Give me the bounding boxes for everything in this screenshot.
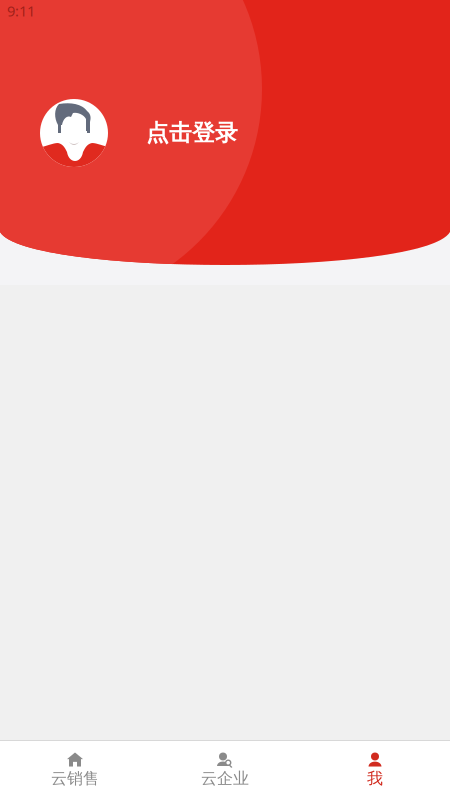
button[interactable]: 云销售 (0, 740, 150, 800)
staticText: 我 (367, 768, 383, 788)
button[interactable]: 我 (300, 740, 450, 800)
button[interactable]: 云企业 (150, 740, 300, 800)
button[interactable]: 点击登录 (0, 99, 450, 167)
staticText: 云企业 (201, 768, 249, 788)
staticText: 点击登录 (146, 119, 238, 147)
staticText: 9:11 (7, 1, 35, 20)
staticText: 云销售 (51, 768, 99, 788)
